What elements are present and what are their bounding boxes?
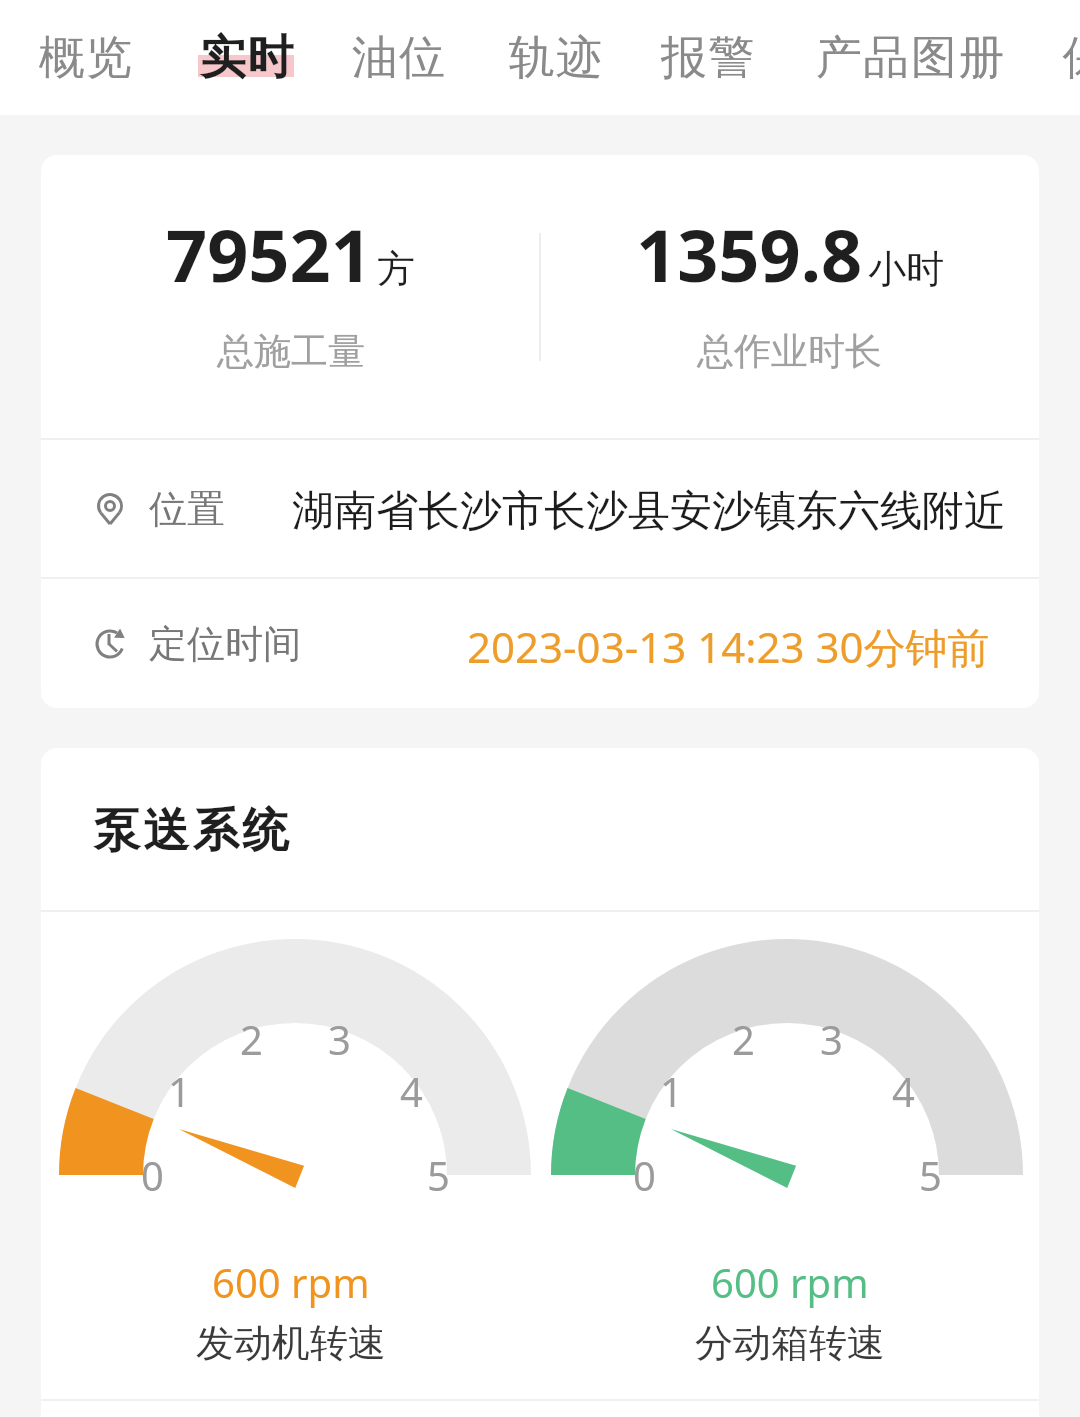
staticText: 79521 [166, 205, 372, 303]
staticText: 小时 [868, 245, 944, 293]
staticText: 泵送系统 [92, 802, 290, 860]
staticText: 600 rpm [212, 1255, 370, 1309]
button[interactable]: 定位时间 [41, 579, 1039, 708]
staticText: 位置 [149, 485, 225, 533]
staticText: 4 [892, 1064, 915, 1118]
staticText: 0 [141, 1148, 164, 1202]
staticText: 总施工量 [217, 328, 365, 375]
button[interactable]: 保养 [1062, 29, 1080, 87]
staticText: 分动箱转速 [695, 1319, 885, 1367]
button[interactable]: 油位 [351, 29, 446, 87]
staticText: 保养 [1062, 29, 1080, 87]
button[interactable]: 产品图册 [815, 29, 1005, 87]
staticText: 5 [427, 1148, 450, 1202]
staticText: 5 [919, 1148, 942, 1202]
staticText: 方 [377, 245, 415, 293]
staticText: 轨迹 [508, 29, 603, 87]
staticText: 2 [240, 1012, 263, 1066]
staticText: 实时 [199, 29, 294, 87]
staticText: 油位 [351, 29, 446, 87]
button[interactable]: 概览 [38, 29, 133, 87]
button[interactable]: 实时 [198, 29, 294, 87]
staticText: 总作业时长 [697, 328, 882, 375]
button[interactable]: 轨迹 [508, 29, 603, 87]
staticText: 报警 [660, 29, 755, 87]
staticText: 产品图册 [815, 29, 1005, 87]
staticText: 1 [168, 1064, 191, 1118]
staticText: 定位时间 [149, 620, 301, 668]
staticText: 1 [660, 1064, 683, 1118]
staticText: 4 [400, 1064, 423, 1118]
staticText: 3 [820, 1012, 843, 1066]
staticText: 概览 [38, 29, 133, 87]
button[interactable]: 位置 [41, 440, 1039, 577]
button[interactable]: 报警 [660, 29, 755, 87]
staticText: 0 [633, 1148, 656, 1202]
staticText: 600 rpm [711, 1255, 869, 1309]
staticText: 2 [732, 1012, 755, 1066]
staticText: 发动机转速 [196, 1319, 386, 1367]
staticText: 湖南省长沙市长沙县安沙镇东六线附近 [292, 485, 1006, 538]
staticText: 1359.8 [636, 205, 863, 303]
staticText: 2023-03-13 14:23 30分钟前 [467, 618, 990, 675]
staticText: 3 [328, 1012, 351, 1066]
